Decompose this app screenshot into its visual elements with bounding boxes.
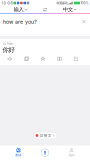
- button[interactable]: Copy: [22, 55, 31, 63]
- button[interactable]: 我的: [60, 145, 82, 160]
- button[interactable]: Full screen: [55, 55, 64, 63]
- button[interactable]: Play audio: [5, 55, 14, 63]
- staticText: nǐ hǎo: [3, 41, 13, 46]
- button[interactable]: 翻译: [7, 145, 29, 160]
- staticText: 中国移动: [56, 1, 68, 5]
- staticText: 100%: [80, 1, 88, 5]
- button[interactable]: 汉英文: [33, 132, 57, 139]
- staticText: 10:06: [1, 1, 12, 5]
- button[interactable]: Clear text: [80, 14, 88, 24]
- button[interactable]: 中文: [60, 6, 79, 13]
- staticText: 汉英文: [40, 133, 52, 138]
- button[interactable]: Swap languages: [41, 6, 49, 13]
- button[interactable]: Favourite: [38, 55, 47, 63]
- staticText: 我的: [68, 153, 74, 157]
- button[interactable]: Share: [71, 55, 80, 63]
- staticText: 翻译: [15, 153, 21, 157]
- staticText: 中文: [63, 6, 73, 13]
- button[interactable]: 输入: [11, 6, 30, 13]
- button[interactable]: Voice input: [34, 145, 56, 160]
- staticText: 输入: [14, 6, 24, 13]
- staticText: 你好: [2, 46, 14, 54]
- staticText: how are you?: [3, 19, 37, 25]
